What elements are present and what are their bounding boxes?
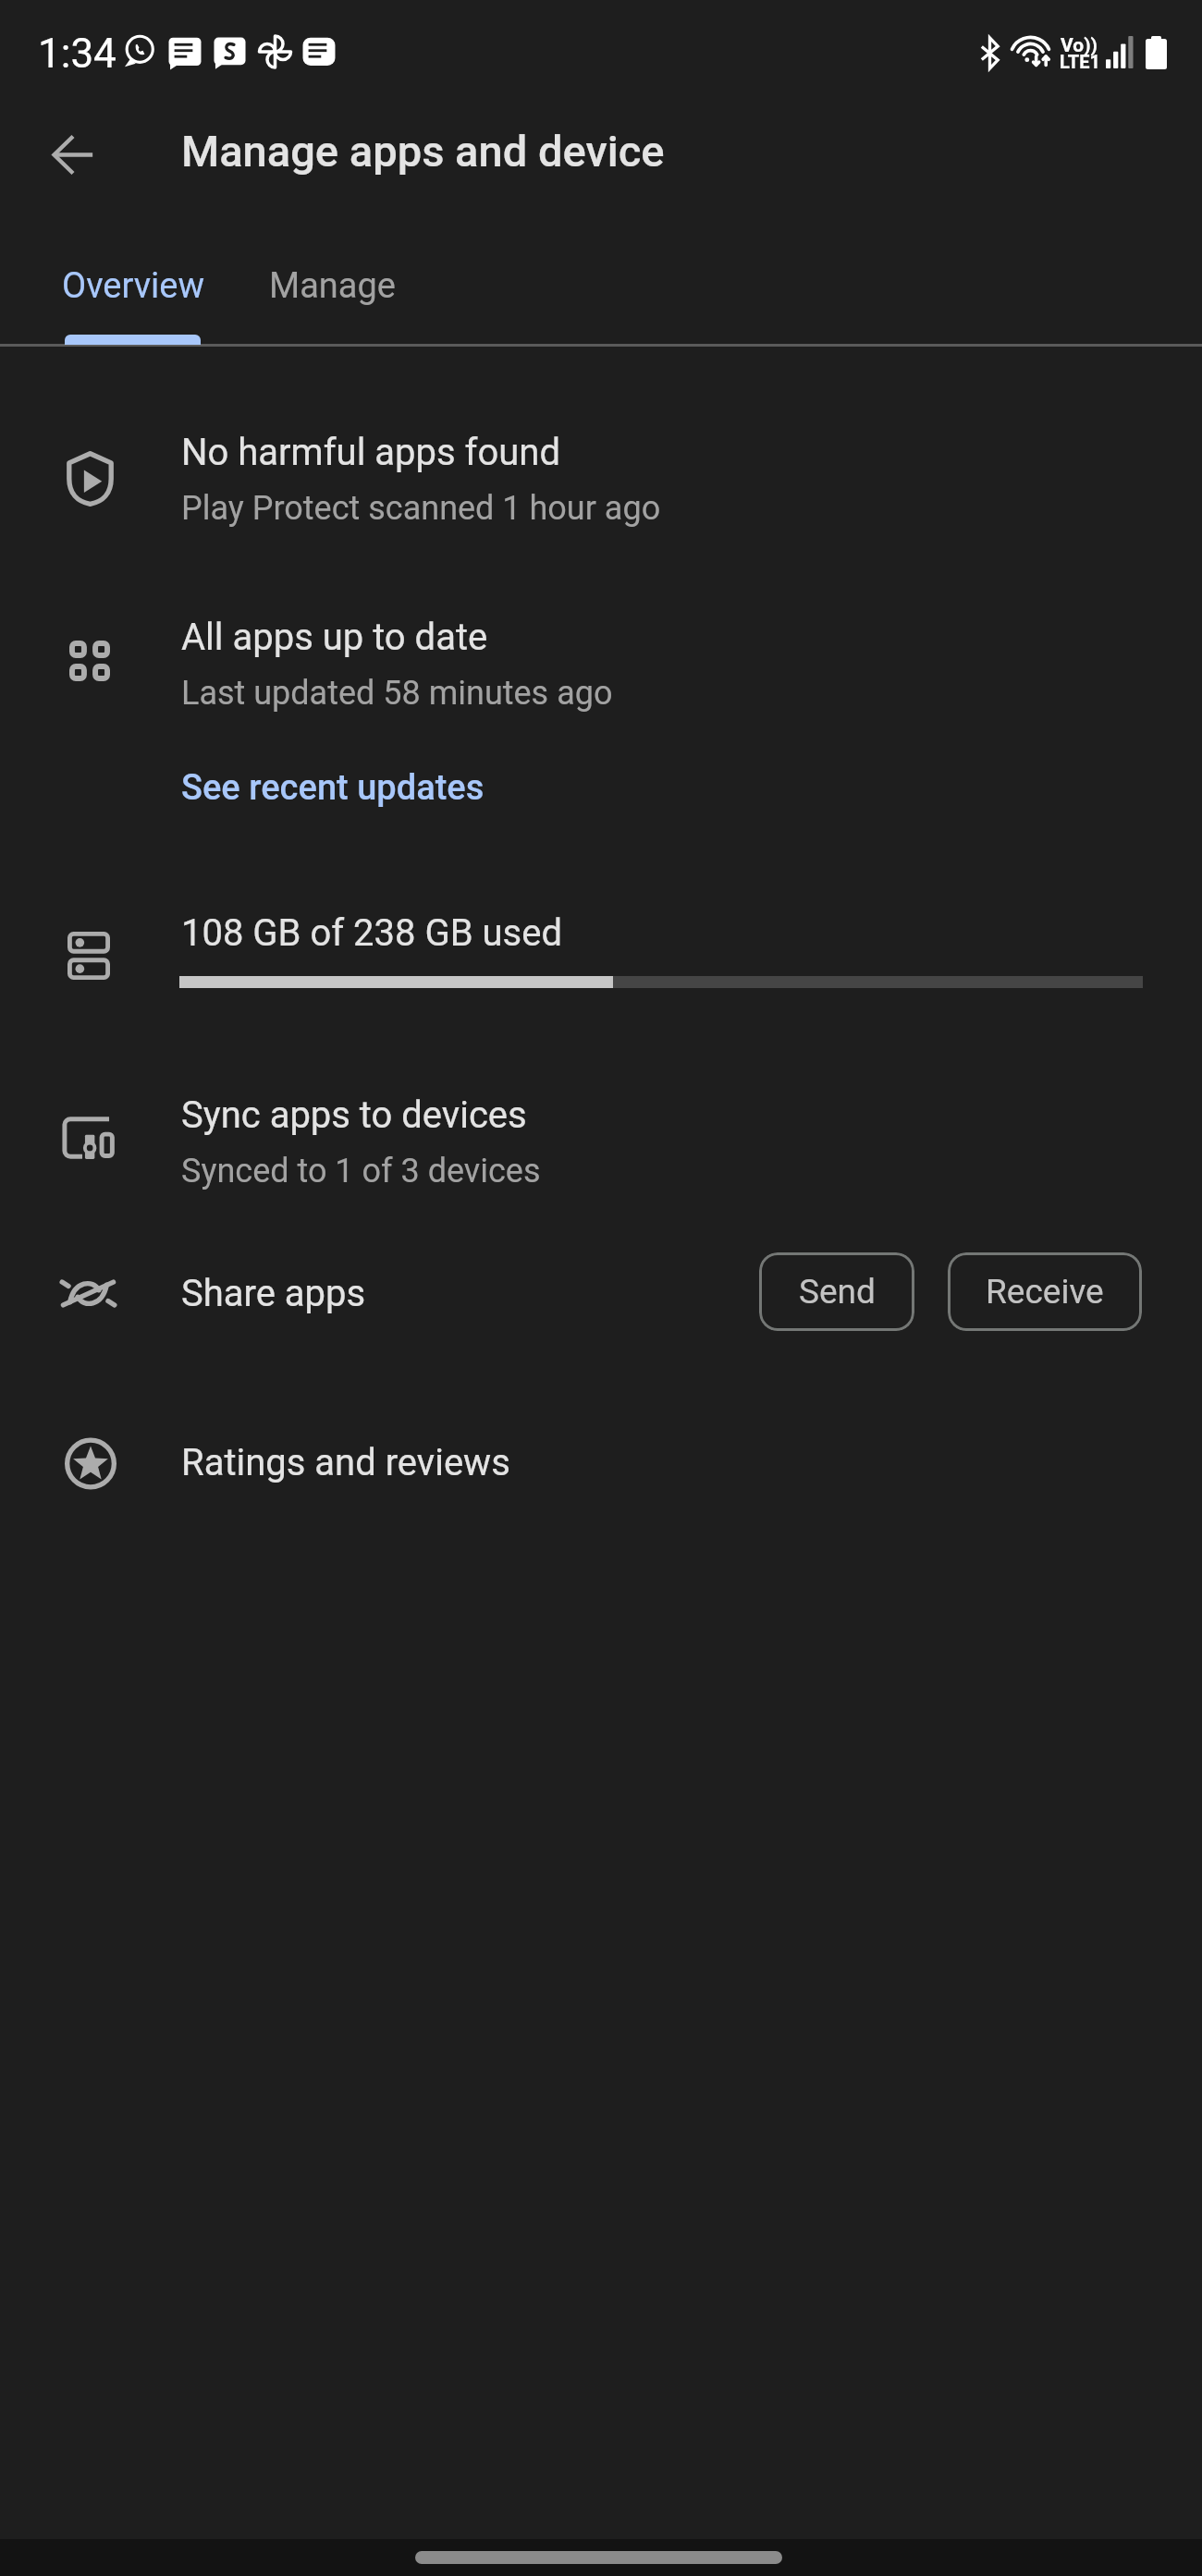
button[interactable]: Send <box>759 1252 914 1331</box>
staticText: All apps up to date <box>181 616 488 659</box>
button[interactable] <box>268 220 490 346</box>
button[interactable] <box>0 1063 1202 1211</box>
button[interactable]: Receive <box>948 1252 1142 1331</box>
staticText: Send <box>799 1272 876 1312</box>
staticText: 108 GB of 238 GB used <box>181 911 563 955</box>
staticText: Last updated 58 minutes ago <box>181 674 613 713</box>
staticText: No harmful apps found <box>181 431 560 474</box>
staticText: Ratings and reviews <box>181 1441 510 1484</box>
staticText: Manage apps and device <box>181 126 665 177</box>
staticText: Sync apps to devices <box>181 1093 527 1137</box>
staticText: Manage <box>269 265 396 307</box>
button[interactable] <box>0 1412 1202 1516</box>
button[interactable] <box>0 1239 703 1349</box>
staticText: Vo)) <box>1061 34 1098 57</box>
staticText: Overview <box>62 265 205 307</box>
staticText: LTE1 <box>1060 51 1100 72</box>
staticText: Synced to 1 of 3 devices <box>181 1152 541 1190</box>
staticText: 1:34 <box>38 30 117 78</box>
button[interactable] <box>0 392 1202 555</box>
staticText: Receive <box>986 1272 1104 1312</box>
staticText: See recent updates <box>181 767 484 809</box>
button[interactable]: Back <box>23 105 119 201</box>
button[interactable] <box>0 883 1202 1012</box>
button[interactable] <box>0 220 268 346</box>
staticText: Share apps <box>181 1272 366 1315</box>
staticText: Play Protect scanned 1 hour ago <box>181 489 661 528</box>
button[interactable] <box>166 760 496 817</box>
